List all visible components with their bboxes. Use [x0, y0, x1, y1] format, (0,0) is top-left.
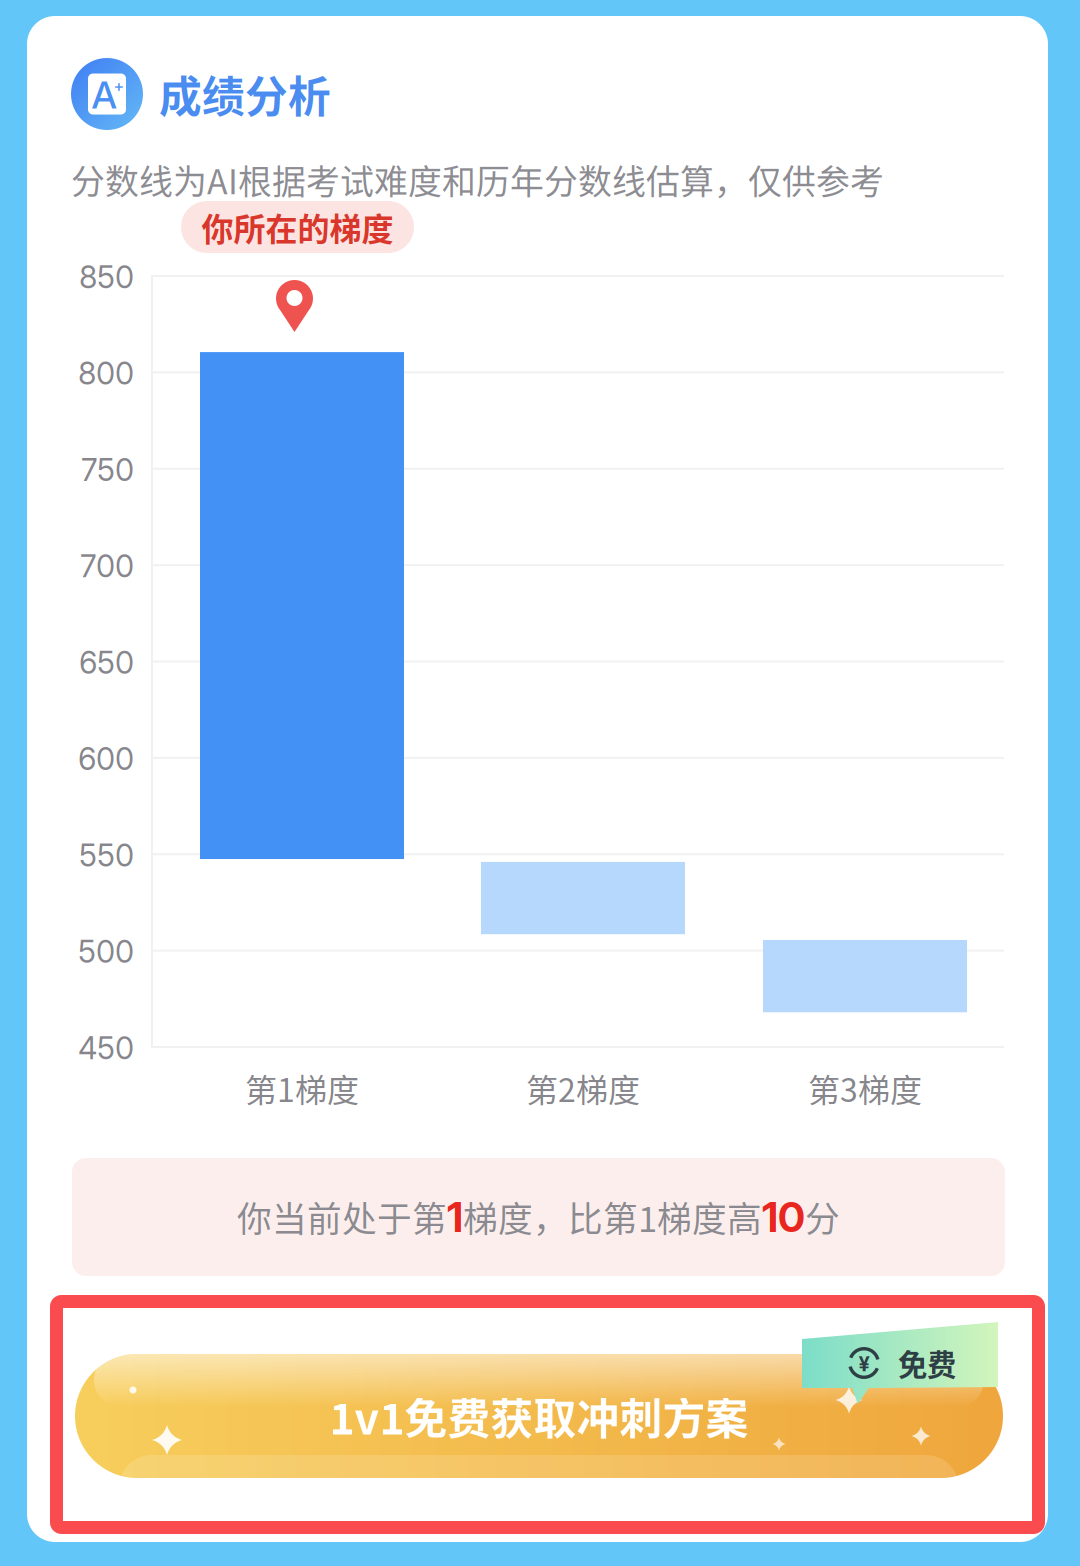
- staticText: 550: [79, 837, 134, 874]
- staticText: +: [113, 76, 124, 96]
- button[interactable]: ¥: [802, 1322, 998, 1404]
- staticText: 650: [79, 644, 134, 681]
- staticText: 10: [762, 1192, 805, 1242]
- staticText: 你当前处于第: [237, 1192, 447, 1242]
- staticText: 450: [78, 1029, 134, 1066]
- staticText: 800: [78, 355, 134, 392]
- staticText: 600: [78, 740, 134, 777]
- staticText: 分: [805, 1192, 840, 1242]
- staticText: 成绩分析: [159, 63, 331, 125]
- staticText: 1: [447, 1192, 463, 1242]
- staticText: 700: [80, 548, 134, 585]
- staticText: 850: [79, 258, 134, 295]
- staticText: 梯度，比第1梯度高: [463, 1192, 762, 1242]
- staticText: 1v1免费获取冲刺方案: [329, 1385, 748, 1447]
- staticText: 免费: [898, 1342, 956, 1384]
- staticText: 你所在的梯度: [201, 204, 393, 250]
- staticText: 500: [78, 933, 134, 970]
- button[interactable]: 1v1免费获取冲刺方案: [75, 1354, 1003, 1478]
- staticText: 750: [81, 451, 134, 488]
- staticText: ¥: [858, 1352, 869, 1376]
- staticText: 第3梯度: [808, 1065, 922, 1111]
- staticText: A: [91, 72, 116, 118]
- staticText: 第1梯度: [245, 1065, 359, 1111]
- staticText: 分数线为AI根据考试难度和历年分数线估算，仅供参考: [71, 155, 884, 204]
- staticText: 第2梯度: [526, 1065, 640, 1111]
